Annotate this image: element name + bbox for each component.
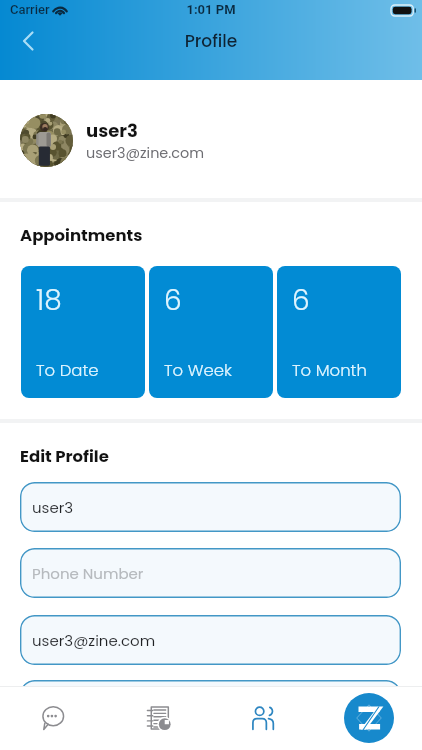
staticText: user3 <box>32 497 74 518</box>
staticText: 1:01 PM <box>0 2 422 17</box>
button[interactable]: Chat <box>0 686 105 750</box>
staticText: user3 <box>86 118 138 143</box>
staticText: Edit Profile <box>20 445 109 468</box>
staticText: 18 <box>36 281 62 320</box>
staticText: To Date <box>36 359 99 382</box>
staticText: user3@zine.com <box>86 143 205 163</box>
staticText: 6 <box>164 281 182 320</box>
button[interactable]: user3 <box>0 80 422 198</box>
staticText: Appointments <box>20 224 143 247</box>
button[interactable]: 6 <box>277 266 401 398</box>
button[interactable]: 6 <box>149 266 273 398</box>
staticText: Phone Number <box>32 563 144 584</box>
button[interactable]: Contacts <box>210 686 316 750</box>
staticText: To Week <box>164 359 232 382</box>
staticText: To Month <box>292 359 367 382</box>
staticText: Profile <box>0 29 422 53</box>
button[interactable] <box>20 680 401 730</box>
button[interactable]: Zine home <box>344 693 394 743</box>
button[interactable]: user3@zine.com <box>20 615 401 665</box>
button[interactable]: user3 <box>20 482 401 532</box>
staticText: Carrier <box>10 2 50 17</box>
button[interactable]: 18 <box>21 266 145 398</box>
staticText: user3@zine.com <box>32 630 156 651</box>
button[interactable]: Schedule <box>105 686 210 750</box>
button[interactable]: Back <box>10 23 46 59</box>
button[interactable]: Phone Number <box>20 548 401 598</box>
staticText: 6 <box>292 281 310 320</box>
